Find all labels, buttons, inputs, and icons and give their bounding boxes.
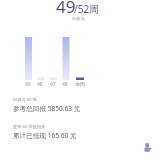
staticText: 已参与	[72, 16, 85, 21]
staticText: 47	[50, 81, 56, 88]
staticText: 46	[37, 81, 43, 88]
staticText: 参考总回报 5850.63 元	[13, 104, 81, 113]
button[interactable]: 使用 60 张抵扣金	[10, 121, 130, 143]
staticText: /52周	[74, 2, 100, 16]
staticText: 49	[56, 0, 76, 18]
staticText: 使用 60 张抵扣金	[13, 124, 46, 130]
staticText: 已参与 60 笔	[13, 97, 37, 103]
staticText: 累计已抵现 165.60 元	[13, 131, 77, 140]
staticText: 45	[25, 81, 31, 88]
button[interactable]: Mascot	[141, 141, 155, 155]
button[interactable]: 已参与 60 笔	[10, 94, 130, 116]
staticText: 48	[62, 81, 68, 88]
staticText: 本周	[75, 81, 85, 87]
